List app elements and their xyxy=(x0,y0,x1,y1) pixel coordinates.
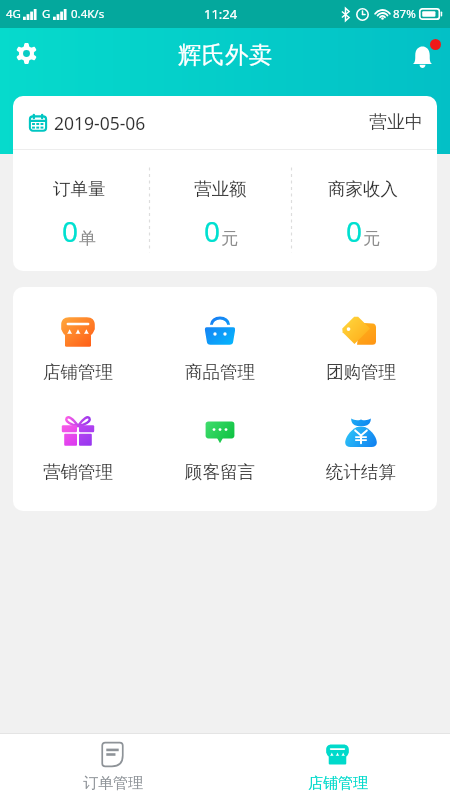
staticText: 0 xyxy=(346,212,363,250)
button[interactable]: 商品管理 xyxy=(149,312,290,383)
staticText: 订单管理 xyxy=(83,774,143,793)
staticText: 营业额 xyxy=(194,178,247,200)
staticText: 营销管理 xyxy=(43,461,113,483)
staticText: 0.4K/s xyxy=(71,6,105,22)
staticText: 4G xyxy=(6,6,21,22)
staticText: G xyxy=(42,6,51,22)
button[interactable]: 2019-05-06 xyxy=(29,96,423,149)
staticText: 元 xyxy=(221,228,238,249)
staticText: 2019-05-06 xyxy=(54,111,146,135)
staticText: 元 xyxy=(363,228,380,249)
button[interactable]: 店铺管理 xyxy=(225,734,450,800)
staticText: 辉氏外卖 xyxy=(178,40,272,70)
button[interactable]: 商家收入 xyxy=(292,150,433,271)
staticText: 团购管理 xyxy=(326,361,396,383)
button[interactable]: 顾客留言 xyxy=(149,412,290,483)
staticText: 87% xyxy=(393,6,416,22)
staticText: 商家收入 xyxy=(328,178,398,200)
staticText: 0 xyxy=(62,212,79,250)
button[interactable]: Settings xyxy=(6,33,46,73)
staticText: 0 xyxy=(204,212,221,250)
staticText: 11:24 xyxy=(204,5,238,23)
button[interactable]: 统计结算 xyxy=(290,412,431,483)
staticText: 店铺管理 xyxy=(308,774,368,793)
button[interactable]: 店铺管理 xyxy=(13,312,149,383)
staticText: 店铺管理 xyxy=(43,361,113,383)
button[interactable]: 营销管理 xyxy=(13,412,149,483)
button[interactable]: 团购管理 xyxy=(290,312,431,383)
button[interactable]: Notifications xyxy=(404,33,446,75)
button[interactable]: 订单管理 xyxy=(0,734,225,800)
staticText: 商品管理 xyxy=(185,361,255,383)
staticText: 顾客留言 xyxy=(185,461,255,483)
staticText: 统计结算 xyxy=(326,461,396,483)
staticText: 单 xyxy=(79,228,96,249)
button[interactable]: 订单量 xyxy=(13,150,149,271)
button[interactable]: 营业额 xyxy=(150,150,291,271)
staticText: 营业中 xyxy=(369,111,423,134)
staticText: 订单量 xyxy=(53,178,106,200)
